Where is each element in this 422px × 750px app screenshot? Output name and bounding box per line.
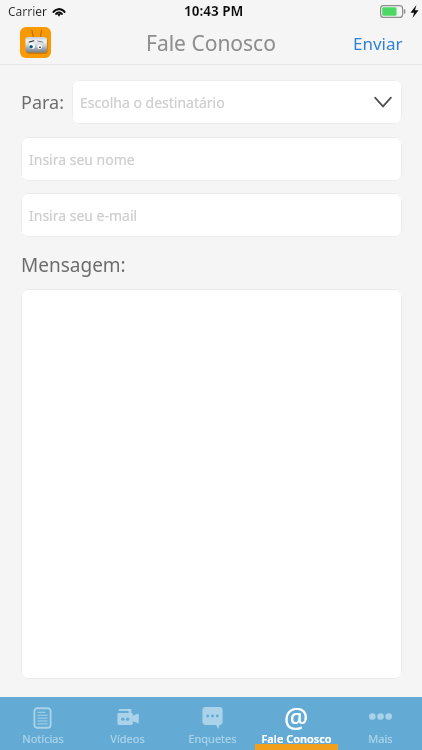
staticText: Vídeos <box>110 731 145 746</box>
button[interactable]: Notícias <box>0 697 85 750</box>
button[interactable]: App logo <box>20 27 51 58</box>
button[interactable]: Enviar <box>335 24 422 63</box>
staticText: Insira seu nome <box>29 150 135 169</box>
staticText: Escolha o destinatário <box>80 93 374 112</box>
staticText: Insira seu e-mail <box>29 206 138 225</box>
button[interactable]: Escolha o destinatário <box>72 80 402 124</box>
button[interactable]: Vídeos <box>85 697 170 750</box>
staticText: @ <box>284 699 309 736</box>
staticText: Notícias <box>22 731 64 746</box>
staticText: Mais <box>368 731 393 746</box>
button[interactable]: Insira seu nome <box>21 137 402 181</box>
staticText: Carrier <box>8 3 48 19</box>
staticText: Enquetes <box>188 731 237 746</box>
button[interactable]: Insira seu e-mail <box>21 193 402 237</box>
staticText: Fale Conosco <box>146 29 276 58</box>
button[interactable]: Fale Conosco <box>254 697 338 750</box>
staticText: Para: <box>21 90 64 115</box>
button[interactable]: Enquetes <box>170 697 254 750</box>
button[interactable]: Mais <box>338 697 422 750</box>
staticText: Enviar <box>353 32 403 55</box>
staticText: Fale Conosco <box>261 731 332 746</box>
staticText: 10:43 PM <box>184 2 244 20</box>
staticText: Mensagem: <box>21 252 126 278</box>
